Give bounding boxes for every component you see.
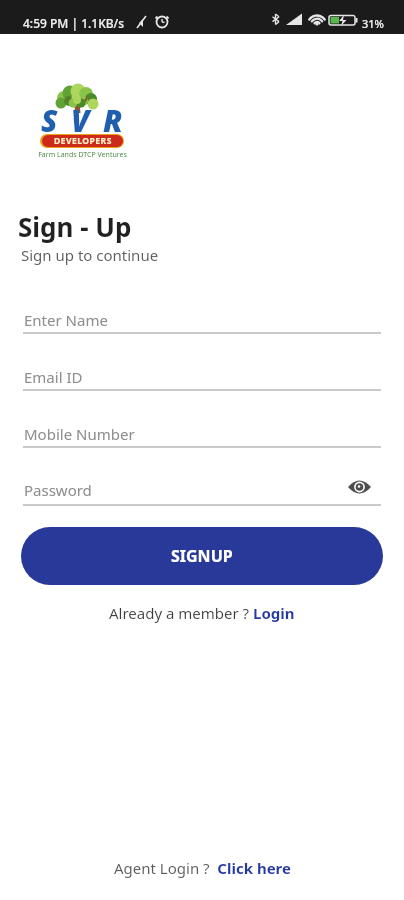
- button[interactable]: Email ID: [23, 367, 381, 389]
- staticText: 31%: [362, 16, 384, 31]
- staticText: SVR: [41, 100, 136, 141]
- staticText: 4:59 PM | 1.1KB/s: [23, 15, 125, 31]
- button[interactable]: Mobile Number: [23, 424, 381, 446]
- staticText: Mobile Number: [24, 424, 135, 444]
- staticText: Sign up to continue: [21, 245, 159, 265]
- button[interactable]: Already a member ? Login: [109, 603, 295, 623]
- staticText: SIGNUP: [171, 545, 233, 567]
- button[interactable]: Enter Name: [23, 310, 381, 332]
- staticText: Password: [24, 480, 92, 500]
- staticText: Farm Lands DTCP Ventures: [38, 150, 127, 160]
- button[interactable]: Agent Login ? Click here: [114, 858, 291, 878]
- staticText: Sign - Up: [18, 209, 132, 244]
- button[interactable]: Password: [23, 480, 381, 502]
- staticText: DEVELOPERS: [54, 135, 112, 147]
- button[interactable]: SIGNUP: [21, 527, 383, 585]
- staticText: Email ID: [24, 367, 83, 387]
- staticText: Enter Name: [24, 310, 108, 330]
